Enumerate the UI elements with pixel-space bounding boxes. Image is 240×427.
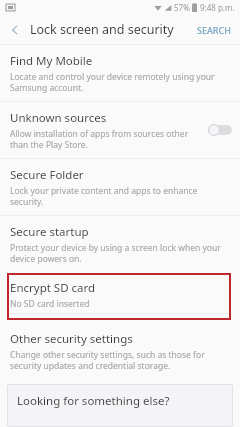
button[interactable]: Back — [0, 15, 30, 44]
staticText: Lock screen and security — [30, 21, 174, 38]
staticText: Other security settings — [10, 331, 133, 347]
staticText: Secure Folder — [10, 167, 84, 183]
staticText: Encrypt SD card — [10, 280, 96, 296]
staticText: SEARCH — [197, 24, 231, 36]
staticText: Looking for something else? — [17, 393, 170, 409]
button[interactable]: Unknown sources toggle — [208, 124, 232, 136]
button[interactable]: Secure Folder — [0, 159, 240, 215]
staticText: 9:48 p.m. — [200, 2, 235, 13]
button[interactable]: Other security settings — [0, 323, 240, 379]
staticText: Find My Mobile — [10, 53, 93, 69]
button[interactable]: Secure startup — [0, 216, 240, 272]
staticText: No SD card inserted — [10, 298, 90, 310]
staticText: 57% — [174, 2, 190, 13]
staticText: Protect your device by using a screen lo… — [10, 242, 232, 264]
staticText: Lock your private content and apps to en… — [10, 185, 232, 207]
button[interactable]: SEARCH — [188, 15, 240, 44]
staticText: Secure startup — [10, 224, 89, 240]
button[interactable]: Find My Mobile — [0, 45, 240, 101]
staticText: Unknown sources — [10, 110, 107, 126]
staticText: Locate and control your device remotely … — [10, 71, 232, 93]
button[interactable]: Encrypt SD card — [7, 273, 231, 320]
staticText: Change other security settings, such as … — [10, 349, 232, 371]
staticText: Allow installation of apps from sources … — [10, 128, 202, 150]
button[interactable]: Unknown sources — [0, 102, 240, 158]
